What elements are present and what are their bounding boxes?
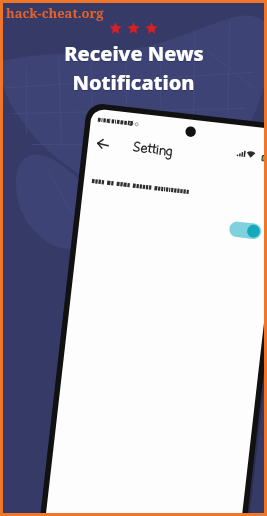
staticText: Receive News xyxy=(64,41,204,68)
staticText: Notification xyxy=(72,69,195,96)
staticText: Notification xyxy=(72,70,195,97)
staticText: Receive News xyxy=(64,40,204,67)
button[interactable]: Receive News Notification promo xyxy=(0,0,267,516)
staticText: hack-cheat.org xyxy=(6,4,104,22)
